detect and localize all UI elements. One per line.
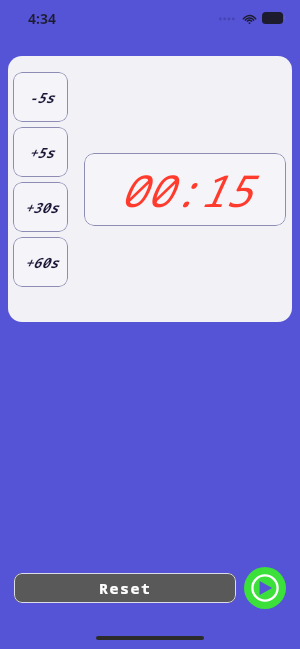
button[interactable]: +30s (13, 182, 68, 232)
button[interactable]: -5s (13, 72, 68, 122)
button[interactable]: Reset (14, 573, 236, 603)
button[interactable]: 00:15 (84, 153, 286, 226)
staticText: 00:15 (119, 160, 251, 220)
staticText: -5s (28, 88, 54, 107)
staticText: +60s (24, 253, 58, 272)
button[interactable]: Start timer (244, 567, 286, 609)
staticText: Reset (99, 578, 152, 598)
staticText: +30s (24, 198, 58, 217)
staticText: 4:34 (28, 9, 56, 28)
button[interactable]: +60s (13, 237, 68, 287)
staticText: +5s (28, 143, 54, 162)
button[interactable]: +5s (13, 127, 68, 177)
